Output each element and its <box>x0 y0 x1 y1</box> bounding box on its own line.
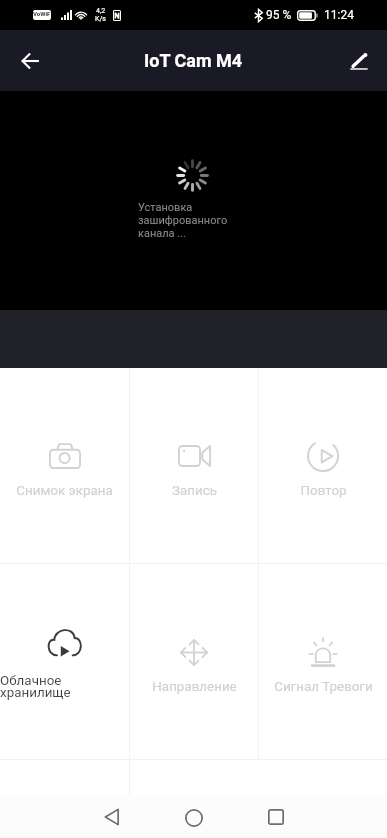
staticText: Запись <box>172 483 217 499</box>
staticText: 95 % <box>266 8 292 22</box>
button[interactable]: Edit <box>331 33 387 89</box>
button[interactable]: Повтор <box>259 368 387 563</box>
button[interactable]: Back <box>87 795 135 838</box>
staticText: 4,2 <box>96 7 106 15</box>
button[interactable]: Home <box>170 795 218 838</box>
button[interactable]: Облачное хранилище <box>0 564 129 759</box>
staticText: Направление <box>152 679 237 695</box>
staticText: Снимок экрана <box>16 483 113 499</box>
staticText: IoT Cam M4 <box>144 50 243 71</box>
button[interactable]: Back <box>0 33 61 89</box>
staticText: Повтор <box>300 483 347 499</box>
staticText: VoWiFi <box>33 10 51 20</box>
staticText: Установка зашифрованного канала ... <box>138 201 228 240</box>
staticText: Сигнал Тревоги <box>274 679 373 695</box>
staticText: 11:24 <box>324 8 354 22</box>
button[interactable]: Направление <box>130 564 258 759</box>
button[interactable]: Запись <box>130 368 258 563</box>
button[interactable]: Сигнал Тревоги <box>259 564 387 759</box>
staticText: Облачное хранилище <box>0 673 71 700</box>
button[interactable]: Recents <box>252 795 300 838</box>
button[interactable]: Снимок экрана <box>0 368 129 563</box>
staticText: K/s <box>95 15 106 23</box>
